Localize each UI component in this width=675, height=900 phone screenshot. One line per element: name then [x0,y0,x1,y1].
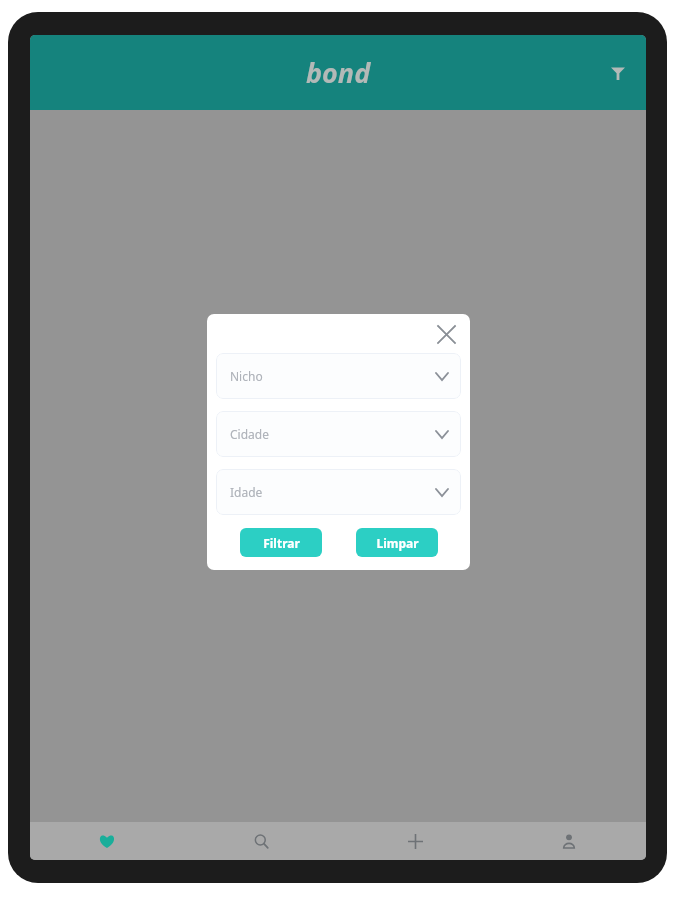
staticText: Limpar [376,535,419,551]
button[interactable]: Cidade [216,411,461,457]
staticText: Idade [230,484,436,500]
button[interactable]: Profile [492,822,646,860]
staticText: Nicho [230,368,436,384]
button[interactable]: Filtrar [240,528,322,557]
button[interactable]: Limpar [356,528,438,557]
button[interactable]: Search [184,822,338,860]
button[interactable]: Close [431,319,461,349]
staticText: bond [306,54,371,91]
staticText: Filtrar [263,535,300,551]
staticText: Cidade [230,426,436,442]
button[interactable]: Favorites [30,822,184,860]
button[interactable]: Add [338,822,492,860]
button[interactable]: Nicho [216,353,461,399]
button[interactable]: Filter [596,51,640,95]
button[interactable]: Idade [216,469,461,515]
